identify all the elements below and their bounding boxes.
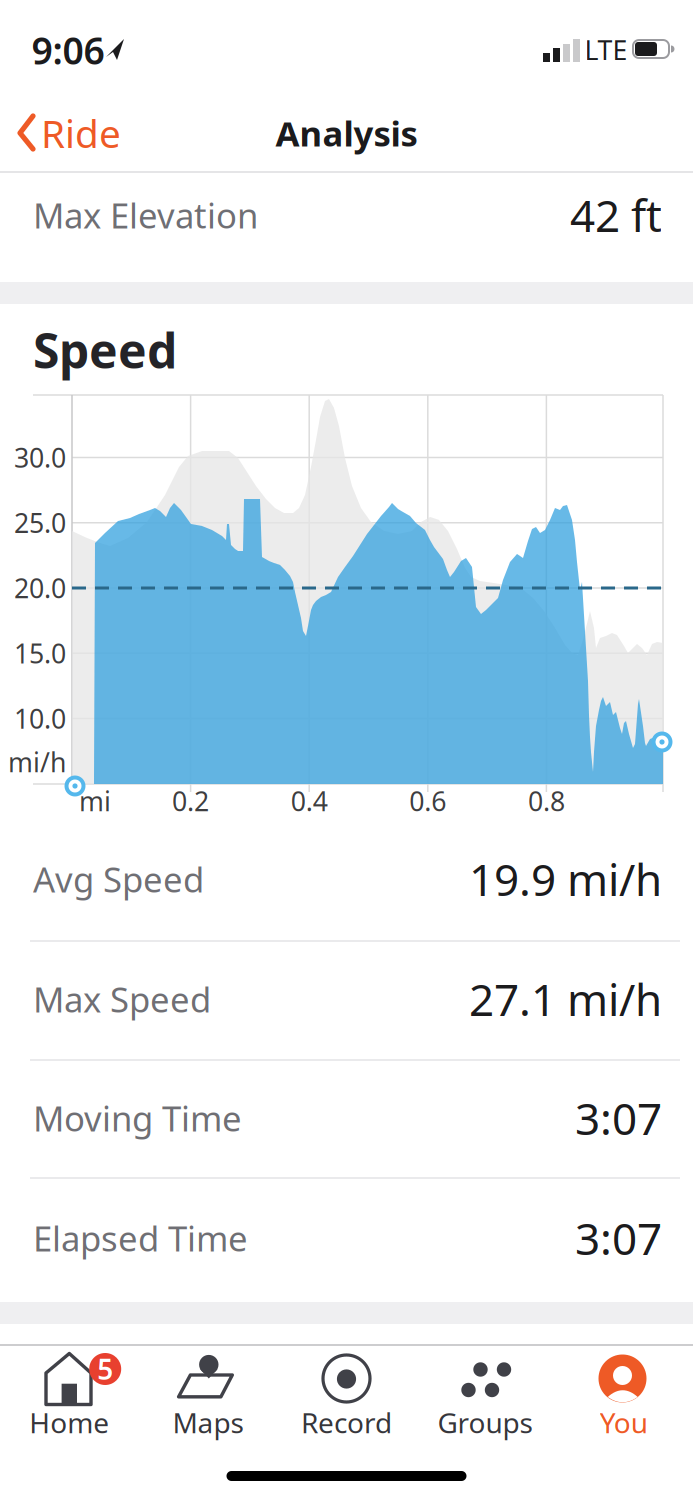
staticText: Avg Speed (33, 856, 204, 902)
staticText: 3:07 (575, 1089, 662, 1147)
staticText: Elapsed Time (33, 1215, 248, 1261)
staticText: LTE (584, 32, 627, 68)
staticText: 0.2 (172, 783, 209, 819)
staticText: 0.6 (409, 783, 446, 819)
staticText: 30.0 (14, 440, 66, 475)
staticText: 3:07 (575, 1209, 662, 1267)
staticText: Max Elevation (33, 192, 258, 238)
staticText: You (600, 1404, 648, 1441)
staticText: Max Speed (33, 976, 211, 1022)
staticText: 25.0 (14, 505, 66, 540)
button[interactable]: Groups (416, 1345, 554, 1440)
button[interactable]: Record (277, 1345, 415, 1440)
staticText: 20.0 (14, 570, 66, 606)
staticText: mi (79, 783, 111, 819)
staticText: 15.0 (14, 635, 66, 671)
staticText: Home (29, 1404, 109, 1441)
staticText: mi/h (8, 744, 66, 780)
staticText: 27.1 mi/h (469, 970, 662, 1028)
staticText: 19.9 mi/h (469, 850, 662, 908)
button[interactable]: 5 (0, 1345, 138, 1440)
staticText: Analysis (275, 110, 417, 156)
staticText: Maps (172, 1404, 243, 1441)
staticText: 0.8 (528, 783, 565, 819)
staticText: Speed (33, 318, 177, 382)
button[interactable]: Ride (0, 98, 130, 168)
staticText: 5 (97, 1350, 113, 1388)
button[interactable]: Maps (139, 1345, 277, 1440)
staticText: 0.4 (291, 783, 328, 819)
staticText: Ride (41, 107, 121, 159)
staticText: Groups (438, 1404, 533, 1441)
staticText: 9:06 (31, 25, 104, 75)
button[interactable]: You (555, 1345, 693, 1440)
staticText: 10.0 (14, 701, 66, 736)
staticText: 42 ft (570, 186, 662, 244)
staticText: Record (301, 1404, 392, 1441)
staticText: Moving Time (33, 1095, 242, 1141)
